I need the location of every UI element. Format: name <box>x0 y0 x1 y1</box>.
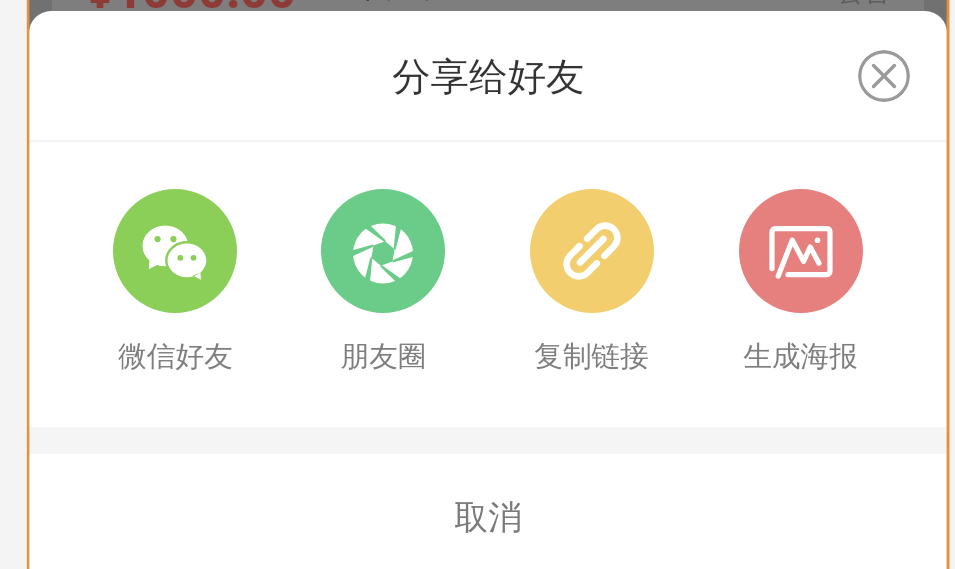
staticText: 微信好友 <box>118 338 233 374</box>
staticText: 复制链接 <box>534 338 649 374</box>
button[interactable]: 朋友圈 <box>279 142 487 427</box>
staticText: 公告 <box>837 0 891 9</box>
staticText: 取消 <box>454 496 522 539</box>
button[interactable]: 微信好友 <box>71 142 279 427</box>
button[interactable]: 取消 <box>29 454 947 569</box>
button[interactable]: 生成海报 <box>696 142 905 427</box>
button[interactable]: Close <box>858 50 910 102</box>
staticText: 生成海报 <box>743 338 858 374</box>
staticText: 代金券 <box>361 0 451 6</box>
staticText: 朋友圈 <box>340 338 427 374</box>
staticText: ¥1000.00 <box>86 0 296 23</box>
button[interactable]: 复制链接 <box>487 142 696 427</box>
staticText: 分享给好友 <box>392 53 585 102</box>
